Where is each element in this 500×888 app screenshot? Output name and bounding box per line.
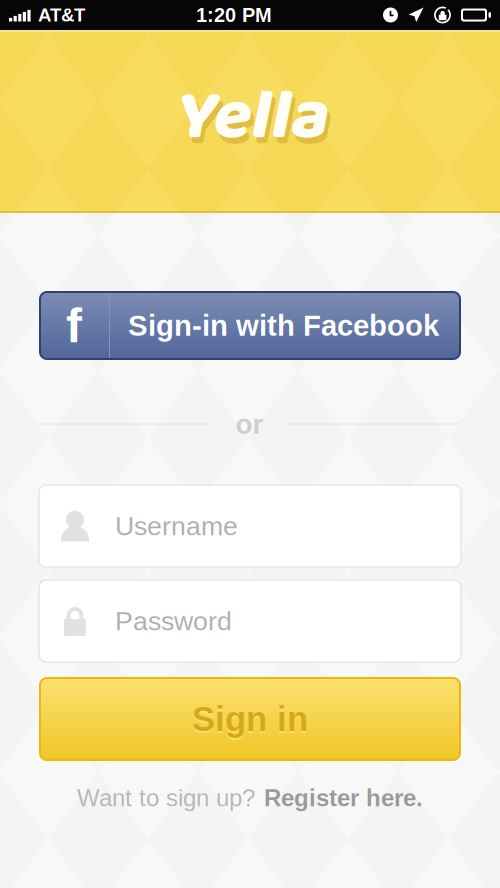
staticText: Sign-in with Facebook — [128, 309, 439, 342]
button[interactable]: Sign in — [39, 677, 461, 761]
staticText: Sign in — [192, 700, 308, 738]
staticText: Want to sign up? — [77, 785, 255, 811]
staticText: Yella — [173, 62, 326, 173]
button[interactable]: f — [39, 291, 461, 360]
staticText: Yella — [176, 68, 329, 179]
staticText: Username — [115, 511, 238, 541]
staticText: Register here. — [264, 785, 423, 811]
staticText: f — [66, 299, 82, 352]
staticText: 1:20 PM — [196, 4, 272, 26]
button[interactable]: Want to sign up? — [39, 775, 461, 821]
staticText: Sign in — [192, 702, 308, 740]
staticText: Password — [115, 606, 232, 636]
staticText: or — [235, 408, 263, 440]
staticText: AT&T — [38, 5, 85, 25]
